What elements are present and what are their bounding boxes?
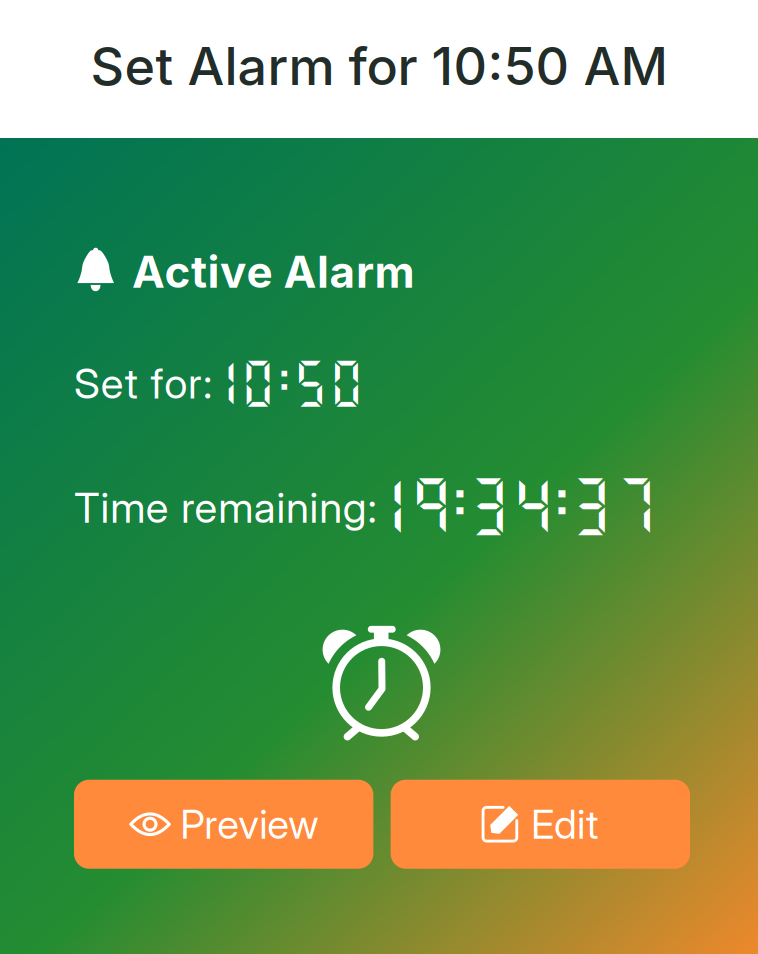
staticText: : [539,469,584,541]
staticText: 19 [364,469,454,541]
staticText: 50 [292,353,364,411]
staticText: : [266,353,302,411]
staticText: Edit [531,800,599,848]
button[interactable]: Edit [391,780,690,869]
staticText: : [437,469,482,541]
staticText: Set for: [74,358,212,409]
staticText: 10 [204,353,276,411]
staticText: Time remaining: [74,482,376,533]
staticText: 37 [568,469,658,541]
staticText: Set Alarm for 10:50 AM [90,34,667,97]
staticText: Active Alarm [132,245,414,298]
staticText: 34 [466,469,556,541]
staticText: Preview [180,800,318,848]
button[interactable]: Preview [74,780,373,869]
